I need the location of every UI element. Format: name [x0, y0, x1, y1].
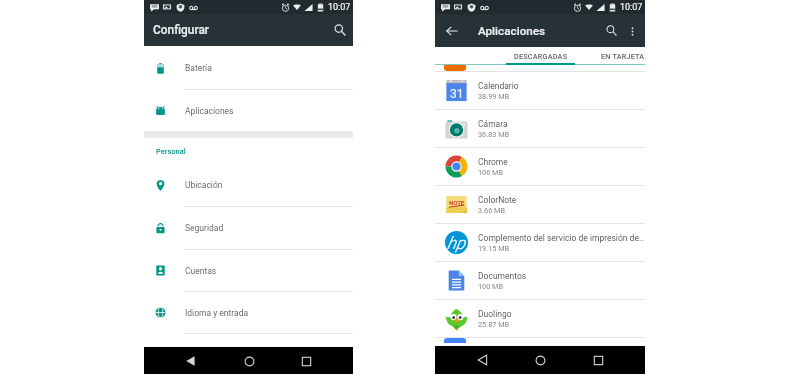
staticText: 38.99 MB	[478, 92, 510, 101]
staticText: Calendario	[478, 81, 519, 91]
button[interactable]: Recents	[296, 351, 316, 371]
button[interactable]: hp	[435, 224, 645, 262]
staticText: Duolingo	[478, 309, 512, 319]
button[interactable]: Back	[181, 351, 201, 371]
button[interactable]: More options	[622, 21, 642, 41]
staticText: Chrome	[478, 157, 508, 167]
button[interactable]: Idioma y entrada	[144, 292, 353, 334]
staticText: Documentos	[478, 271, 527, 281]
staticText: 25.87 MB	[478, 320, 510, 329]
staticText: 19.15 MB	[478, 244, 510, 253]
button[interactable]: Home	[239, 351, 259, 371]
button[interactable]: NOTE	[435, 186, 645, 224]
button[interactable]: Home	[530, 350, 550, 370]
button[interactable]: DESCARGADAS	[506, 47, 576, 65]
staticText: 106 MB	[478, 168, 504, 177]
staticText: NOTE	[449, 199, 465, 206]
staticText: 10:07	[328, 2, 351, 13]
staticText: Batería	[185, 63, 212, 73]
staticText: Cámara	[478, 119, 508, 129]
button[interactable]: 31	[435, 72, 645, 110]
staticText: Aplicaciones	[478, 24, 546, 38]
button[interactable]: Duolingo	[435, 300, 645, 338]
staticText: Ubicación	[185, 180, 223, 190]
staticText: Configurar	[153, 23, 210, 37]
staticText: Seguridad	[185, 223, 224, 233]
button[interactable]: Recents	[588, 350, 608, 370]
staticText: Idioma y entrada	[185, 308, 249, 318]
staticText: Personal	[156, 147, 186, 156]
button[interactable]: Documentos	[435, 262, 645, 300]
button[interactable]: Seguridad	[144, 207, 353, 250]
staticText: Complemento del servicio de impresión de…	[478, 233, 644, 243]
staticText: 10:07	[620, 2, 643, 13]
button[interactable]: Batería	[144, 47, 353, 90]
button[interactable]: Search	[601, 20, 622, 41]
staticText: ColorNote	[478, 195, 517, 205]
button[interactable]: Cámara	[435, 110, 645, 148]
button[interactable]: Aplicaciones	[144, 90, 353, 131]
staticText: 100 MB	[478, 282, 504, 291]
staticText: 31	[450, 87, 464, 101]
staticText: EN TARJETA	[601, 52, 645, 60]
button[interactable]: Ubicación	[144, 164, 353, 207]
staticText: DESCARGADAS	[514, 52, 568, 60]
staticText: Cuentas	[185, 266, 217, 276]
button[interactable]: Back	[442, 21, 461, 40]
staticText: Aplicaciones	[185, 106, 234, 116]
button[interactable]: Search	[331, 21, 349, 39]
staticText: 3.66 MB	[478, 206, 505, 215]
staticText: 36.83 MB	[478, 130, 510, 139]
staticText: hp	[447, 233, 466, 253]
button[interactable]: Back	[473, 350, 493, 370]
button[interactable]: Chrome	[435, 148, 645, 186]
button[interactable]: EN TARJETA	[588, 47, 658, 65]
button[interactable]: Cuentas	[144, 250, 353, 292]
